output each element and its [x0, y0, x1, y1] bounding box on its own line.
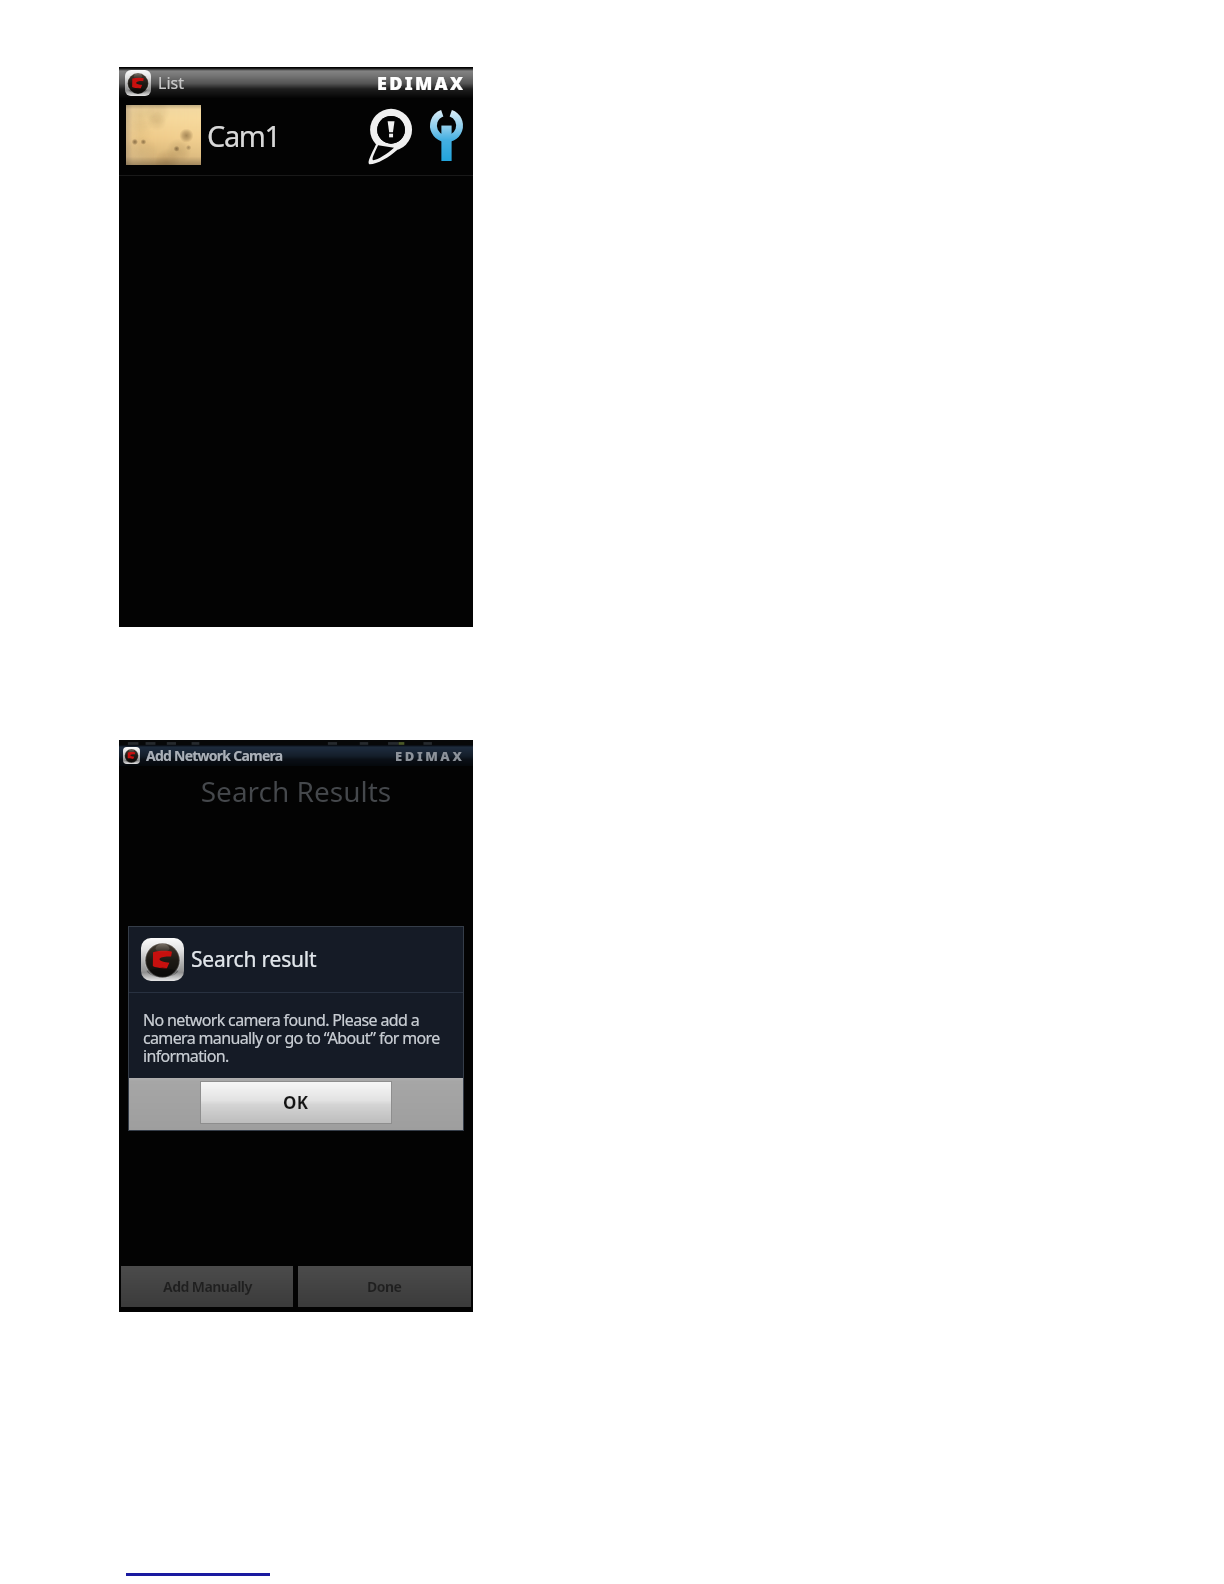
button[interactable]: Done [298, 1266, 471, 1307]
button[interactable]: Add Manually [121, 1266, 293, 1307]
staticText: Cam1 [207, 116, 280, 155]
button[interactable]: Camera settings [424, 104, 469, 166]
button[interactable]: Camera status [364, 104, 419, 166]
button[interactable]: OK [201, 1082, 391, 1123]
staticText: Add Manually [163, 1277, 252, 1296]
staticText: Search result [191, 945, 317, 974]
staticText: Done [367, 1277, 402, 1296]
staticText: OK [283, 1091, 309, 1114]
button[interactable]: Cam1 [119, 98, 473, 176]
staticText: Add Network Camera [146, 746, 283, 765]
staticText: EDIMAX [395, 747, 465, 765]
staticText: EDIMAX [377, 71, 466, 96]
staticText: List [158, 72, 184, 94]
staticText: No network camera found. Please add a ca… [143, 1009, 459, 1067]
staticText: Search Results [119, 772, 473, 810]
